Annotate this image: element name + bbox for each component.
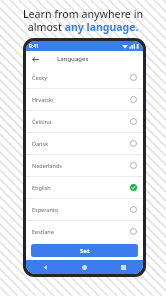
button[interactable]: Recents (104, 260, 143, 274)
staticText: Esperanto (32, 206, 59, 213)
button[interactable]: Set (31, 244, 138, 257)
button[interactable]: Dansk (26, 133, 143, 154)
button[interactable]: Home (65, 260, 104, 274)
staticText: 9:41 (29, 43, 39, 50)
button[interactable]: Čeština (26, 111, 143, 132)
button[interactable]: Esperanto (26, 199, 143, 220)
button[interactable]: Eestlane (26, 221, 143, 242)
button[interactable]: Suomi (26, 243, 143, 260)
staticText: Dansk (32, 140, 49, 147)
staticText: Languages (57, 55, 89, 63)
button[interactable]: English (26, 177, 143, 198)
staticText: Nederlands (32, 162, 62, 169)
staticText: Set (80, 247, 90, 255)
staticText: Learn from anywhere in almost any langua… (10, 7, 156, 34)
button[interactable]: Hrvatski (26, 89, 143, 110)
button[interactable]: Nederlands (26, 155, 143, 176)
staticText: Česky (32, 74, 47, 81)
staticText: English (32, 184, 51, 191)
staticText: Eestlane (32, 228, 54, 235)
button[interactable]: Back (26, 260, 65, 274)
staticText: Hrvatski (32, 96, 54, 103)
button[interactable]: Back (30, 54, 41, 65)
button[interactable]: Česky (26, 67, 143, 88)
staticText: Čeština (32, 118, 52, 125)
